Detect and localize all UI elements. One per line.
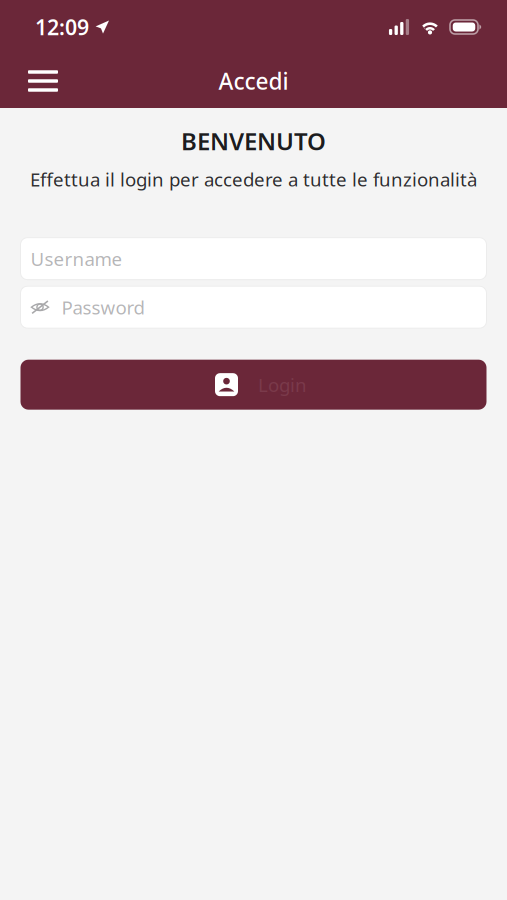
staticText: Accedi bbox=[218, 66, 288, 96]
button[interactable]: Menu bbox=[14, 56, 72, 106]
staticText: Login bbox=[258, 372, 307, 397]
button[interactable]: Username bbox=[20, 238, 486, 280]
button[interactable]: Password bbox=[20, 286, 486, 328]
button[interactable]: Login bbox=[20, 360, 486, 410]
staticText: Username bbox=[30, 246, 122, 271]
staticText: Password bbox=[61, 295, 144, 320]
staticText: Effettua il login per accedere a tutte l… bbox=[30, 167, 477, 192]
staticText: 12:09 bbox=[35, 13, 89, 41]
staticText: BENVENUTO bbox=[181, 125, 326, 157]
